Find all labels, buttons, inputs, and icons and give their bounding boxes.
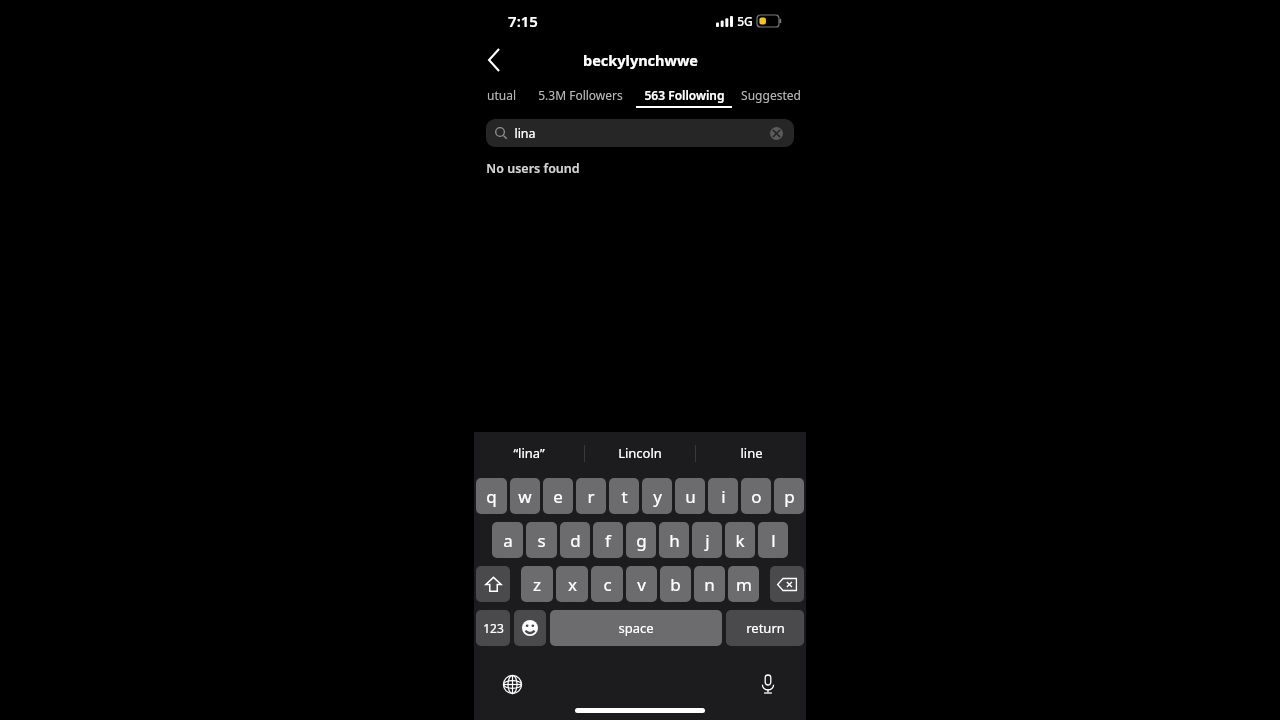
staticText: t bbox=[621, 485, 628, 508]
staticText: j bbox=[705, 529, 710, 552]
button[interactable]: w bbox=[510, 478, 540, 514]
staticText: return bbox=[746, 619, 785, 637]
button[interactable]: p bbox=[774, 478, 804, 514]
staticText: l bbox=[771, 529, 776, 552]
staticText: 7:15 bbox=[508, 11, 538, 31]
staticText: b bbox=[670, 573, 681, 596]
button[interactable]: return bbox=[726, 610, 804, 646]
staticText: w bbox=[518, 485, 532, 508]
staticText: k bbox=[735, 529, 745, 552]
staticText: line bbox=[740, 444, 763, 462]
button[interactable]: 5.3M Followers bbox=[528, 78, 632, 109]
staticText: space bbox=[618, 619, 654, 637]
button[interactable]: Shift bbox=[476, 566, 510, 602]
button[interactable]: r bbox=[576, 478, 606, 514]
button[interactable]: Emoji bbox=[514, 610, 546, 646]
staticText: y bbox=[653, 485, 662, 508]
button[interactable]: Dictation bbox=[752, 668, 784, 700]
staticText: Lincoln bbox=[618, 444, 662, 462]
staticText: i bbox=[721, 485, 726, 508]
staticText: lina bbox=[514, 125, 536, 142]
staticText: 5G bbox=[737, 13, 753, 29]
button[interactable]: 563 Following bbox=[632, 78, 736, 109]
button[interactable]: m bbox=[728, 566, 759, 602]
button[interactable]: q bbox=[476, 478, 507, 514]
button[interactable]: c bbox=[591, 566, 623, 602]
staticText: h bbox=[669, 529, 680, 552]
button[interactable]: utual bbox=[474, 78, 528, 109]
staticText: utual bbox=[487, 87, 516, 103]
button[interactable]: l bbox=[758, 522, 788, 558]
button[interactable]: v bbox=[626, 566, 657, 602]
staticText: d bbox=[570, 529, 581, 552]
staticText: “lina” bbox=[513, 444, 545, 462]
staticText: q bbox=[486, 485, 497, 508]
staticText: u bbox=[685, 485, 696, 508]
button[interactable]: z bbox=[521, 566, 553, 602]
button[interactable]: o bbox=[741, 478, 771, 514]
staticText: 563 Following bbox=[644, 87, 725, 103]
button[interactable]: Switch keyboard language bbox=[496, 668, 528, 700]
button[interactable]: Back bbox=[474, 42, 514, 78]
staticText: 123 bbox=[483, 620, 504, 636]
staticText: 5.3M Followers bbox=[538, 87, 623, 103]
button[interactable]: a bbox=[492, 522, 523, 558]
button[interactable]: s bbox=[526, 522, 557, 558]
button[interactable]: i bbox=[708, 478, 738, 514]
staticText: r bbox=[587, 485, 595, 508]
button[interactable]: t bbox=[609, 478, 639, 514]
button[interactable]: g bbox=[626, 522, 656, 558]
button[interactable]: 123 bbox=[476, 610, 510, 646]
button[interactable]: n bbox=[694, 566, 725, 602]
button[interactable]: h bbox=[659, 522, 689, 558]
button[interactable]: e bbox=[543, 478, 573, 514]
button[interactable]: Suggested bbox=[736, 78, 806, 109]
button[interactable]: f bbox=[593, 522, 623, 558]
button[interactable]: Clear search bbox=[767, 124, 785, 142]
button[interactable]: Lincoln bbox=[585, 432, 695, 474]
button[interactable]: u bbox=[675, 478, 705, 514]
button[interactable]: Backspace bbox=[770, 566, 804, 602]
staticText: c bbox=[603, 573, 612, 596]
staticText: v bbox=[637, 573, 646, 596]
button[interactable]: y bbox=[642, 478, 672, 514]
staticText: g bbox=[636, 529, 647, 552]
staticText: s bbox=[537, 529, 546, 552]
staticText: a bbox=[503, 529, 513, 552]
button[interactable]: d bbox=[560, 522, 590, 558]
button[interactable]: space bbox=[550, 610, 722, 646]
button[interactable]: x bbox=[556, 566, 588, 602]
staticText: Suggested bbox=[741, 87, 801, 103]
button[interactable]: line bbox=[696, 432, 806, 474]
staticText: f bbox=[605, 529, 611, 552]
staticText: No users found bbox=[486, 160, 580, 177]
staticText: n bbox=[704, 573, 715, 596]
staticText: x bbox=[568, 573, 577, 596]
button[interactable]: “lina” bbox=[474, 432, 584, 474]
button[interactable]: b bbox=[660, 566, 691, 602]
staticText: p bbox=[784, 485, 795, 508]
staticText: m bbox=[736, 573, 752, 596]
button[interactable]: j bbox=[692, 522, 722, 558]
button[interactable]: lina bbox=[486, 119, 794, 147]
staticText: z bbox=[533, 573, 541, 596]
staticText: o bbox=[751, 485, 762, 508]
staticText: beckylynchwwe bbox=[583, 50, 698, 70]
button[interactable]: k bbox=[725, 522, 755, 558]
staticText: e bbox=[553, 485, 563, 508]
